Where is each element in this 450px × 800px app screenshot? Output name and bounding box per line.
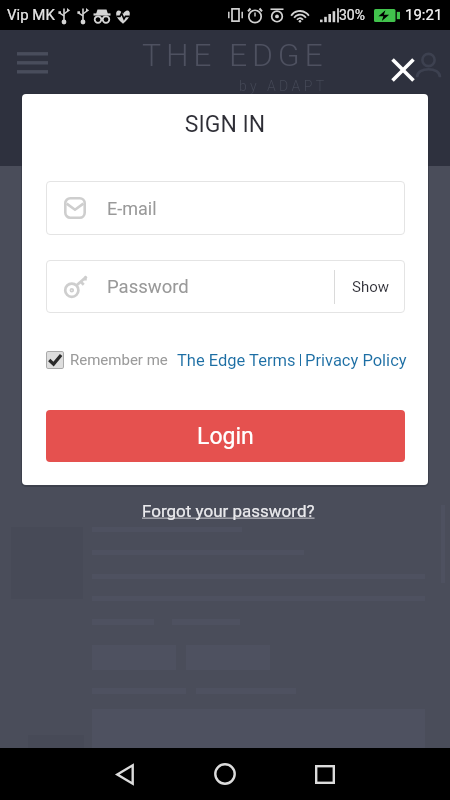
staticText: THE EDGE: [142, 36, 328, 74]
button[interactable]: Close: [381, 48, 424, 91]
staticText: 19:21: [405, 6, 443, 24]
button[interactable]: Login: [46, 410, 405, 462]
button[interactable]: Menu: [4, 35, 60, 91]
staticText: Show: [352, 278, 389, 296]
button[interactable]: Back: [95, 752, 155, 796]
staticText: Vip MK: [7, 6, 55, 24]
button[interactable]: Recents: [295, 752, 355, 796]
staticText: by ADAPT: [239, 78, 328, 94]
staticText: SIGN IN: [22, 111, 428, 138]
button[interactable]: Home: [195, 752, 255, 796]
button[interactable]: Remember me: [46, 351, 168, 369]
staticText: Remember me: [70, 351, 168, 369]
staticText: E-mail: [107, 198, 157, 219]
button[interactable]: Privacy Policy: [305, 351, 407, 370]
button[interactable]: E-mail: [46, 181, 405, 235]
button[interactable]: Show: [335, 260, 405, 313]
staticText: Login: [197, 423, 254, 450]
staticText: Forgot your password?: [142, 501, 315, 521]
staticText: Password: [107, 276, 189, 298]
button[interactable]: Forgot your password?: [142, 501, 315, 521]
staticText: 30%: [339, 7, 365, 23]
button[interactable]: The Edge Terms: [177, 351, 296, 370]
